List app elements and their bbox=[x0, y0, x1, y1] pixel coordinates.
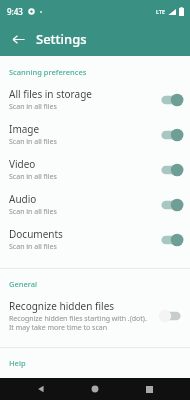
staticText: Settings bbox=[36, 30, 87, 48]
staticText: LTE bbox=[156, 8, 165, 15]
staticText: All files in storage bbox=[9, 87, 92, 101]
button[interactable]: On bbox=[159, 128, 183, 142]
button[interactable]: On bbox=[159, 163, 183, 177]
button[interactable]: Audio bbox=[0, 187, 190, 222]
staticText: Recognize hidden files starting with .(d… bbox=[9, 314, 153, 332]
staticText: Scan in all files bbox=[9, 207, 57, 217]
staticText: Scan in all files bbox=[9, 102, 57, 112]
button[interactable]: Documents bbox=[0, 222, 190, 257]
button[interactable]: Off bbox=[159, 309, 183, 323]
staticText: Scan in all files bbox=[9, 137, 57, 147]
button[interactable]: Image bbox=[0, 117, 190, 152]
button[interactable]: Recent apps bbox=[136, 378, 162, 400]
button[interactable]: Back bbox=[6, 27, 30, 51]
staticText: Help bbox=[9, 358, 190, 368]
staticText: Image bbox=[9, 122, 40, 136]
staticText: Audio bbox=[9, 192, 37, 206]
staticText: Scan in all files bbox=[9, 172, 57, 182]
staticText: Scanning preferences bbox=[9, 67, 190, 77]
staticText: Scan in all files bbox=[9, 242, 57, 252]
button[interactable]: On bbox=[159, 93, 183, 107]
staticText: General bbox=[9, 279, 190, 289]
button[interactable]: All files in storage bbox=[0, 82, 190, 117]
staticText: Video bbox=[9, 157, 36, 171]
button[interactable]: Recognize hidden files bbox=[0, 294, 190, 337]
staticText: Documents bbox=[9, 227, 63, 241]
button[interactable]: Home bbox=[82, 378, 108, 400]
button[interactable]: Back bbox=[28, 378, 54, 400]
staticText: Recognize hidden files bbox=[9, 299, 115, 313]
staticText: 9:43 bbox=[7, 6, 23, 17]
button[interactable]: On bbox=[159, 198, 183, 212]
button[interactable]: On bbox=[159, 233, 183, 247]
button[interactable]: Video bbox=[0, 152, 190, 187]
